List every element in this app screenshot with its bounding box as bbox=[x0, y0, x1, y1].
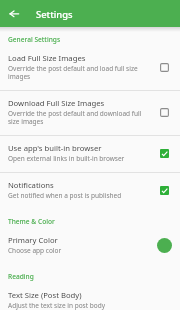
other: Load Full Size Images, unchecked bbox=[160, 63, 169, 72]
other: Notifications, checked bbox=[160, 186, 169, 195]
button[interactable]: Text Size (Post Body) bbox=[0, 283, 180, 310]
button[interactable]: Download Full Size Images bbox=[0, 91, 180, 135]
other: Use app's built-in browser, checked bbox=[160, 149, 169, 158]
button[interactable]: Notifications bbox=[0, 173, 180, 209]
staticText: Override the post default and load full … bbox=[8, 64, 150, 81]
button[interactable]: Primary Color bbox=[0, 228, 180, 264]
staticText: Settings bbox=[36, 8, 73, 21]
staticText: Text Size (Post Body) bbox=[8, 290, 82, 300]
other: Download Full Size Images, unchecked bbox=[160, 108, 169, 117]
staticText: Notifications bbox=[8, 180, 54, 190]
staticText: Get notified when a post is published bbox=[8, 191, 122, 200]
staticText: General Settings bbox=[8, 35, 61, 44]
staticText: Choose app color bbox=[8, 246, 62, 255]
staticText: Open external links in built-in browser bbox=[8, 154, 125, 163]
button[interactable]: Load Full Size Images bbox=[0, 46, 180, 90]
button[interactable]: Choose app color bbox=[157, 238, 172, 253]
staticText: Download Full Size Images bbox=[8, 98, 105, 108]
staticText: Theme & Color bbox=[8, 217, 55, 226]
staticText: Override the post default and download f… bbox=[8, 109, 150, 126]
button[interactable]: Back bbox=[0, 1, 28, 27]
staticText: Adjust the text size in post body bbox=[8, 301, 105, 310]
staticText: Primary Color bbox=[8, 235, 58, 245]
staticText: Use app's built-in browser bbox=[8, 143, 102, 153]
staticText: Reading bbox=[8, 272, 34, 281]
button[interactable]: Use app's built-in browser bbox=[0, 136, 180, 172]
staticText: Load Full Size Images bbox=[8, 53, 86, 63]
